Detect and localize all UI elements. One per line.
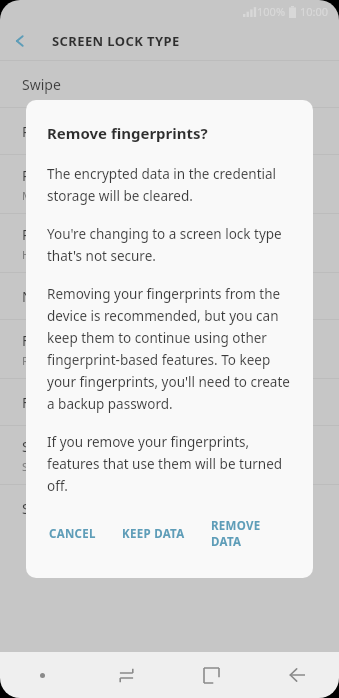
staticText: 100%	[257, 4, 286, 19]
staticText: The encrypted data in the credential sto…	[47, 165, 295, 205]
staticText: Pattern	[22, 122, 71, 141]
staticText: You're changing to a screen lock type th…	[47, 225, 295, 265]
staticText: Set up	[22, 459, 55, 474]
button[interactable]: Back	[254, 652, 339, 698]
button[interactable]: Home	[169, 652, 254, 698]
button[interactable]: Secure lock settings	[0, 485, 339, 531]
staticText: Face	[22, 393, 52, 412]
staticText: SCREEN LOCK TYPE	[52, 32, 180, 50]
button[interactable]: Password	[0, 214, 339, 273]
staticText: If you remove your fingerprints, feature…	[47, 433, 295, 495]
staticText: REMOVE DATA	[211, 518, 293, 550]
button[interactable]: Swipe	[0, 61, 339, 108]
staticText: Smart Lock	[22, 437, 96, 456]
staticText: Registered	[22, 353, 78, 368]
staticText: Password	[22, 225, 86, 244]
staticText: None	[22, 287, 58, 306]
staticText: PIN	[22, 166, 46, 185]
staticText: 10:00	[300, 4, 329, 19]
button[interactable]: KEEP DATA	[120, 520, 187, 548]
staticText: KEEP DATA	[122, 526, 185, 542]
button[interactable]: REMOVE DATA	[209, 512, 295, 556]
button[interactable]: None	[0, 273, 339, 320]
button[interactable]: Fingerprints	[0, 320, 339, 379]
staticText: CANCEL	[49, 526, 96, 542]
staticText: Fingerprints	[22, 331, 103, 350]
button[interactable]: Recents	[84, 652, 169, 698]
button[interactable]: Back	[0, 22, 40, 60]
staticText: High security	[22, 247, 90, 262]
button[interactable]: CANCEL	[47, 520, 98, 548]
staticText: Swipe	[22, 75, 61, 94]
staticText: Removing your fingerprints from the devi…	[47, 285, 295, 413]
button[interactable]: Pattern	[0, 108, 339, 155]
staticText: Secure lock settings	[22, 499, 153, 518]
button[interactable]: Smart Lock	[0, 426, 339, 485]
staticText: Medium security	[22, 188, 109, 203]
button[interactable]: PIN	[0, 155, 339, 214]
button[interactable]: Face	[0, 379, 339, 426]
staticText: Remove fingerprints?	[47, 123, 208, 143]
